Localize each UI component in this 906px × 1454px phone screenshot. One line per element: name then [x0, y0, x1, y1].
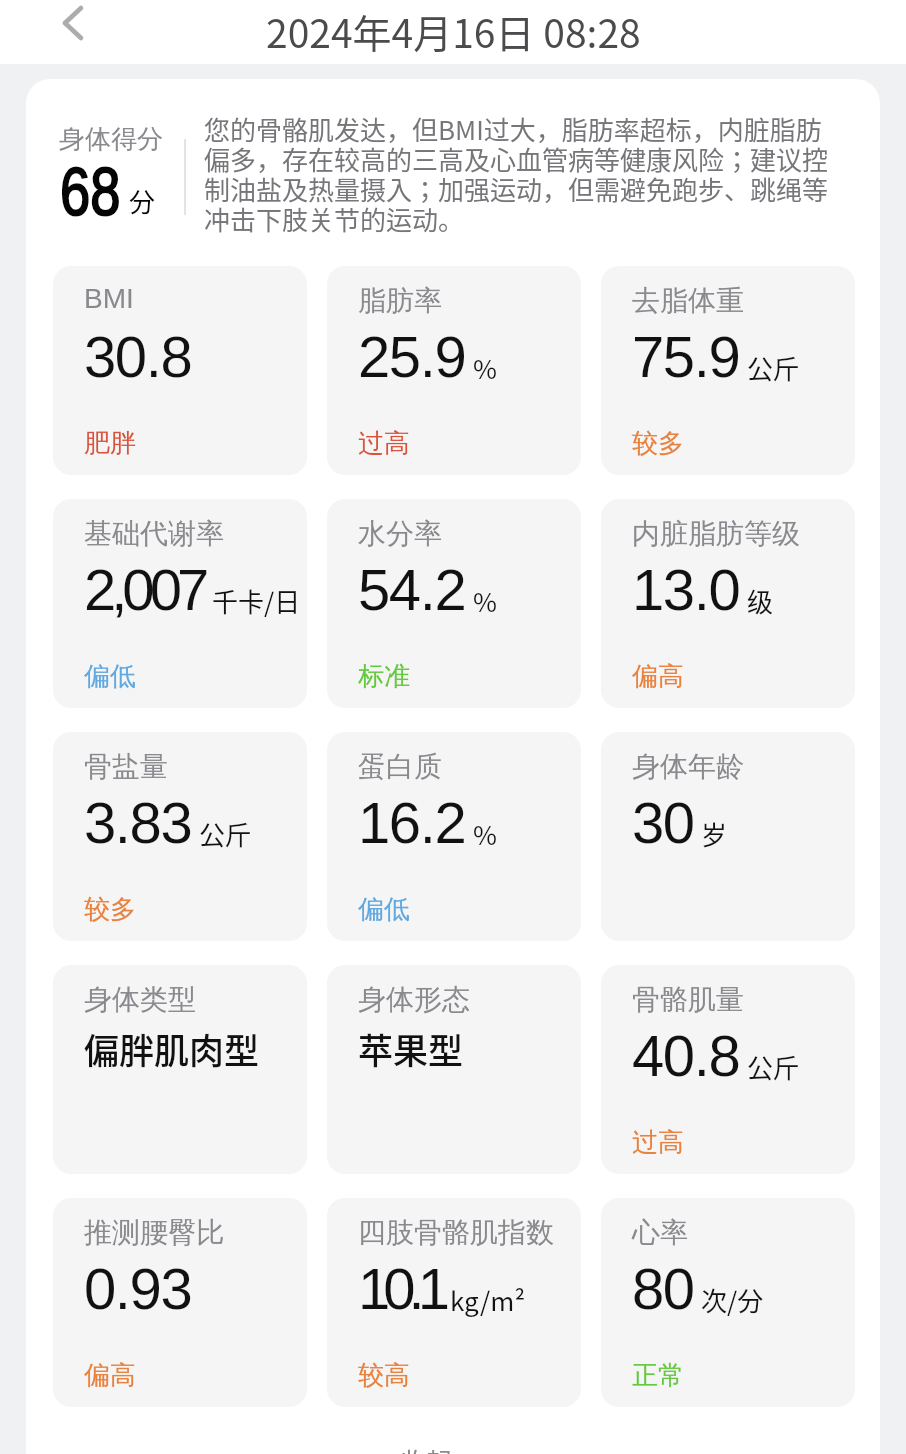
staticText: 2,007 [84, 557, 205, 622]
staticText: 水分率 [358, 516, 442, 551]
staticText: 内脏脂肪等级 [632, 516, 800, 551]
staticText: 蛋白质 [358, 749, 442, 784]
staticText: 0.93 [84, 1256, 192, 1321]
button[interactable]: 脂肪率 [327, 266, 581, 475]
staticText: 身体年龄 [632, 749, 744, 784]
staticText: 54.2 [358, 557, 466, 622]
staticText: 级 [747, 582, 774, 620]
button[interactable]: 身体形态 [327, 965, 581, 1174]
staticText: 肥胖 [84, 427, 136, 460]
staticText: 心率 [632, 1215, 688, 1250]
staticText: 四肢骨骼肌指数 [358, 1215, 554, 1250]
button[interactable]: 心率 [601, 1198, 855, 1407]
staticText: 2024年4月16日 08:28 [266, 3, 641, 59]
button[interactable]: 骨骼肌量 [601, 965, 855, 1174]
staticText: kg/m² [450, 1281, 526, 1319]
staticText: 75.9 [632, 324, 740, 389]
staticText: 脂肪率 [358, 283, 442, 318]
staticText: % [473, 582, 497, 620]
staticText: 偏高 [632, 660, 684, 693]
staticText: BMI [84, 283, 134, 314]
staticText: 千卡/日 [212, 582, 301, 620]
staticText: 骨盐量 [84, 749, 168, 784]
staticText: % [473, 349, 497, 387]
staticText: 岁 [701, 815, 728, 853]
button[interactable]: 蛋白质 [327, 732, 581, 941]
staticText: 偏低 [84, 660, 136, 693]
staticText: 身体得分 [59, 123, 163, 156]
button[interactable]: Back [45, 0, 101, 64]
staticText: 收起 [400, 1442, 453, 1454]
staticText: 30.8 [84, 324, 192, 389]
staticText: 较多 [632, 427, 684, 460]
button[interactable]: 内脏脂肪等级 [601, 499, 855, 708]
button[interactable]: 骨盐量 [53, 732, 307, 941]
staticText: 您的骨骼肌发达，但BMI过大，脂肪率超标，内脏脂肪 偏多，存在较高的三高及心血管… [204, 110, 880, 238]
staticText: 骨骼肌量 [632, 982, 744, 1017]
staticText: 正常 [632, 1359, 684, 1392]
staticText: 30 [632, 790, 694, 855]
staticText: 公斤 [747, 1048, 800, 1086]
button[interactable]: 四肢骨骼肌指数 [327, 1198, 581, 1407]
staticText: % [473, 815, 497, 853]
staticText: 较高 [358, 1359, 410, 1392]
staticText: 10.1 [358, 1256, 443, 1321]
staticText: 16.2 [358, 790, 466, 855]
staticText: 过高 [632, 1126, 684, 1159]
staticText: 偏高 [84, 1359, 136, 1392]
staticText: 去脂体重 [632, 283, 744, 318]
staticText: 过高 [358, 427, 410, 460]
staticText: 偏胖肌肉型 [84, 1023, 260, 1074]
staticText: 苹果型 [358, 1023, 464, 1074]
staticText: 推测腰臀比 [84, 1215, 224, 1250]
staticText: 68 [60, 153, 121, 229]
button[interactable]: 身体年龄 [601, 732, 855, 941]
staticText: 3.83 [84, 790, 192, 855]
button[interactable]: 去脂体重 [601, 266, 855, 475]
button[interactable]: BMI [53, 266, 307, 475]
button[interactable]: 身体类型 [53, 965, 307, 1174]
button[interactable]: 基础代谢率 [53, 499, 307, 708]
staticText: 公斤 [747, 349, 800, 387]
staticText: 偏低 [358, 893, 410, 926]
button[interactable]: 水分率 [327, 499, 581, 708]
button[interactable]: 推测腰臀比 [53, 1198, 307, 1407]
button[interactable]: 收起 [370, 1424, 537, 1454]
staticText: 13.0 [632, 557, 740, 622]
staticText: 标准 [358, 660, 410, 693]
staticText: 较多 [84, 893, 136, 926]
staticText: 身体形态 [358, 982, 470, 1017]
staticText: 分 [129, 182, 156, 220]
staticText: 基础代谢率 [84, 516, 224, 551]
staticText: 80 [632, 1256, 694, 1321]
staticText: 次/分 [701, 1281, 764, 1319]
staticText: 40.8 [632, 1023, 740, 1088]
staticText: 公斤 [199, 815, 252, 853]
staticText: 25.9 [358, 324, 466, 389]
staticText: 身体类型 [84, 982, 196, 1017]
